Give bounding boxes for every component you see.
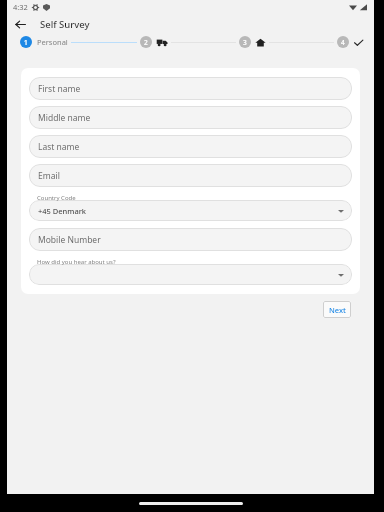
staticText: Middle name: [38, 112, 91, 124]
staticText: Mobile Number: [38, 234, 101, 246]
button[interactable]: Mobile Number: [29, 228, 352, 251]
staticText: 2: [144, 38, 148, 47]
staticText: How did you hear about us?: [37, 258, 116, 266]
other: Expand How did you hear about us?: [337, 271, 344, 278]
staticText: +45 Denmark: [38, 206, 87, 216]
button[interactable]: +45 Denmark: [29, 200, 352, 221]
staticText: Email: [38, 170, 60, 182]
button[interactable]: Email: [29, 164, 352, 187]
button[interactable]: Expand How did you hear about us?: [29, 264, 352, 285]
staticText: Self Survey: [40, 18, 90, 31]
button[interactable]: Shipping step: [140, 36, 168, 48]
button[interactable]: Back: [7, 13, 33, 36]
staticText: Last name: [38, 141, 80, 153]
staticText: 4: [341, 38, 345, 47]
staticText: Next: [329, 305, 346, 315]
button[interactable]: Middle name: [29, 106, 352, 129]
button[interactable]: First name: [29, 77, 352, 100]
staticText: First name: [38, 83, 81, 95]
button[interactable]: Last name: [29, 135, 352, 158]
button[interactable]: Address step: [239, 36, 266, 48]
button[interactable]: Confirm step: [337, 36, 364, 48]
staticText: Country Code: [37, 194, 76, 202]
button[interactable]: 1: [20, 36, 68, 48]
button[interactable]: Next: [323, 301, 351, 318]
staticText: 4:32: [13, 2, 28, 12]
staticText: Personal: [37, 37, 68, 47]
staticText: 3: [243, 38, 247, 47]
staticText: 1: [24, 38, 28, 47]
other: Expand Country Code: [337, 207, 344, 214]
